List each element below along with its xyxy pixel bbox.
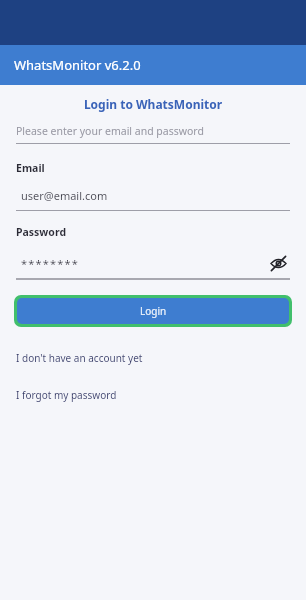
staticText: Email: [16, 161, 45, 175]
staticText: I don't have an account yet: [16, 351, 143, 365]
button[interactable]: Show password: [266, 251, 290, 275]
staticText: Login: [140, 304, 167, 318]
staticText: Login to WhatsMonitor: [0, 96, 306, 112]
staticText: WhatsMonitor v6.2.0: [14, 56, 141, 74]
staticText: Please enter your email and password: [16, 124, 204, 138]
staticText: Password: [16, 225, 67, 239]
staticText: ********: [21, 256, 266, 271]
button[interactable]: I don't have an account yet: [0, 349, 306, 367]
button[interactable]: I forgot my password: [0, 386, 306, 404]
button[interactable]: Login: [14, 295, 292, 327]
staticText: user@email.com: [21, 188, 108, 203]
staticText: I forgot my password: [16, 388, 117, 402]
